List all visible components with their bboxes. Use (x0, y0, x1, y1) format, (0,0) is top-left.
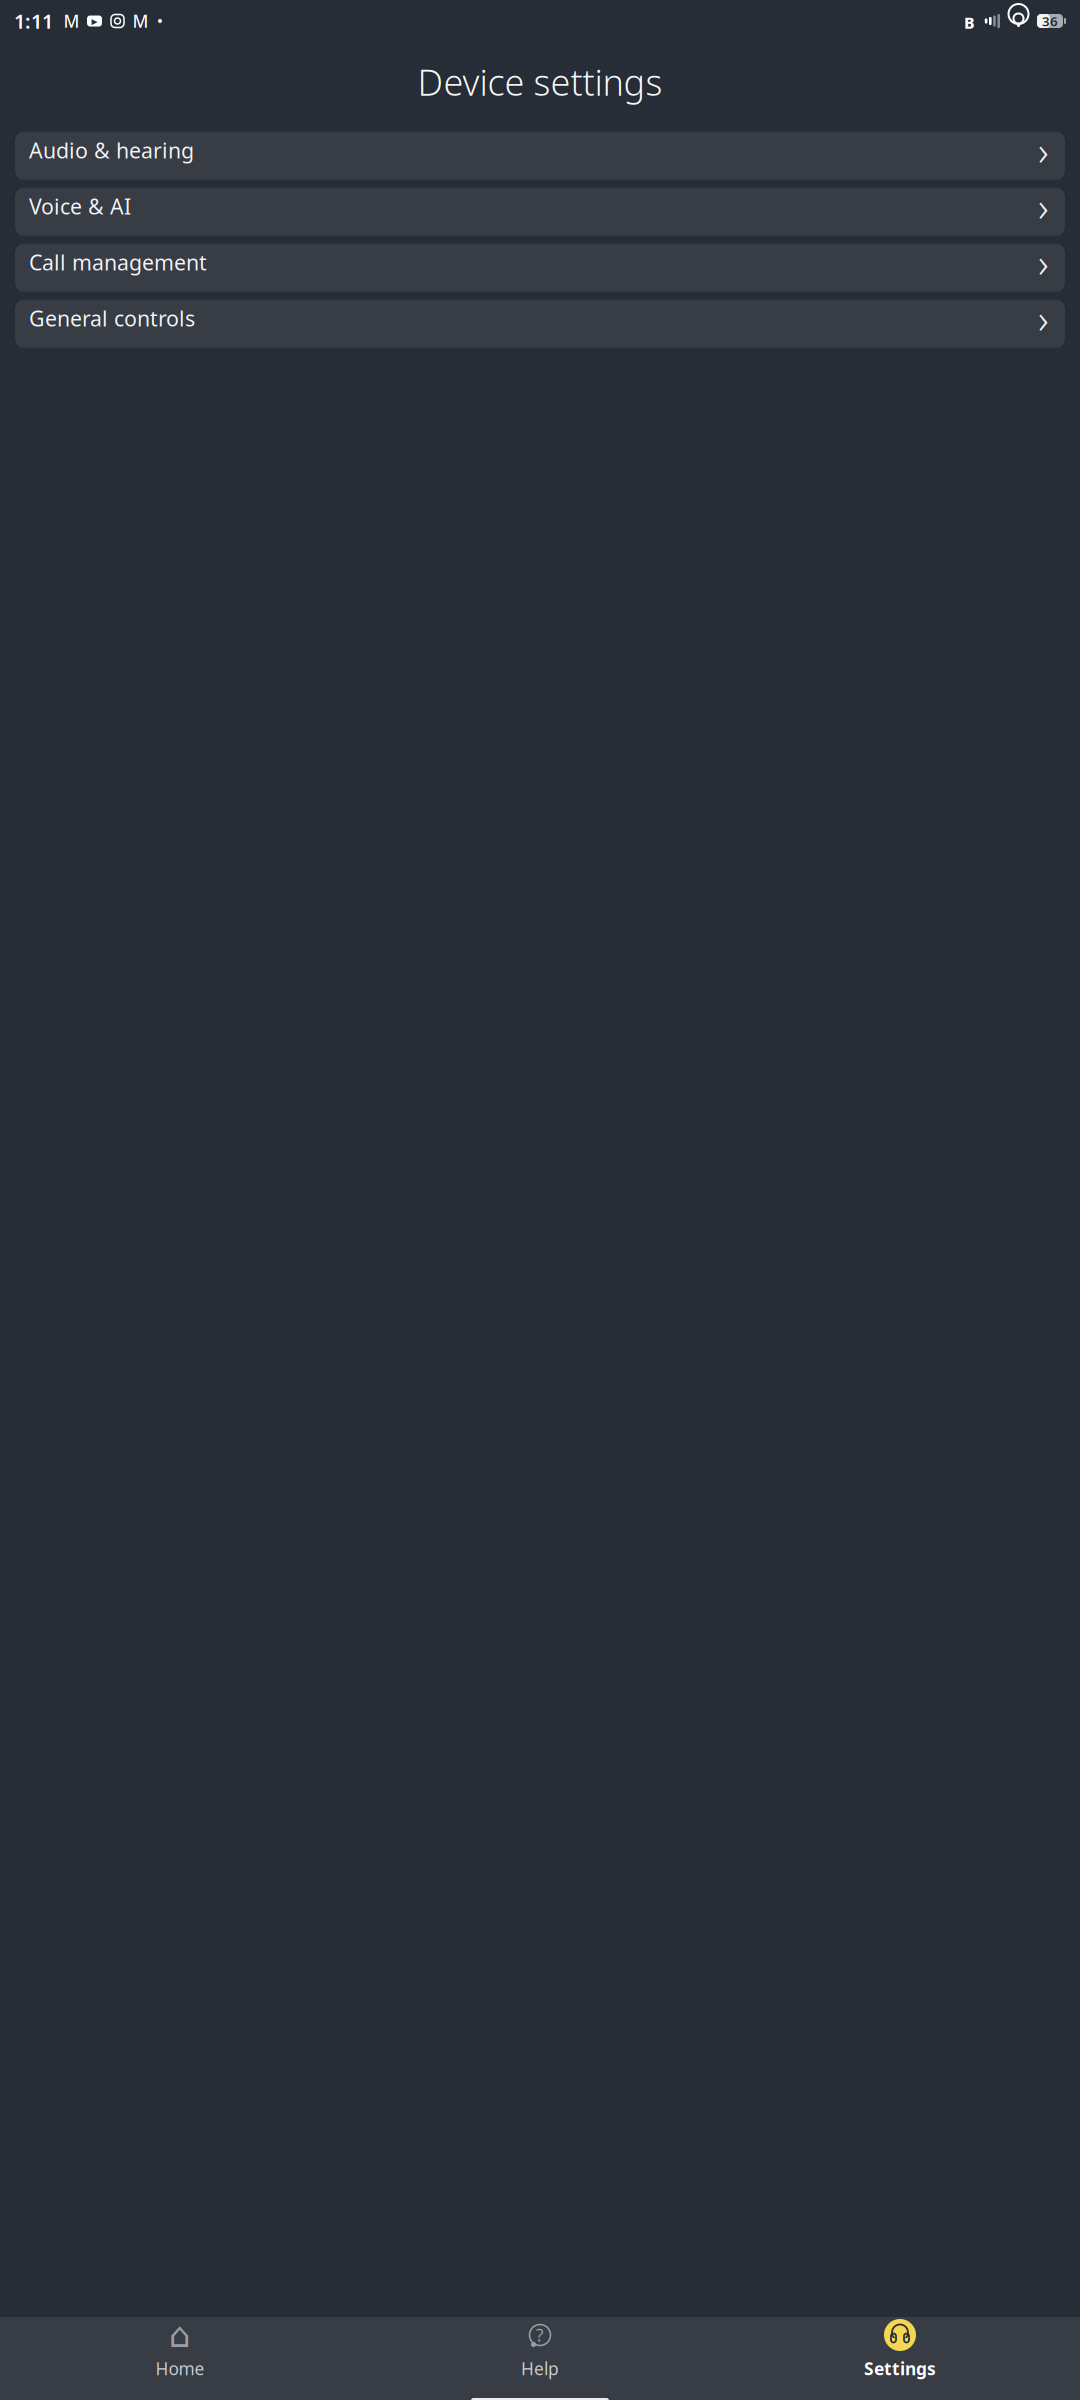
staticText: Call management (29, 248, 207, 276)
staticText: 36 (1042, 12, 1058, 30)
staticText: › (1038, 236, 1049, 289)
staticText: Help (521, 2357, 559, 2380)
button[interactable]: ⌂ (0, 2309, 360, 2390)
staticText: ? (536, 2323, 544, 2346)
staticText: › (1038, 124, 1049, 177)
staticText: M (63, 9, 79, 32)
staticText: Voice & AI (29, 192, 131, 220)
staticText: Home (155, 2357, 204, 2380)
staticText: › (1038, 180, 1049, 233)
staticText: General controls (29, 304, 195, 332)
staticText: ⌂ (169, 2315, 191, 2355)
staticText: ʙ (964, 8, 975, 34)
button[interactable]: ? (360, 2309, 720, 2390)
staticText: Settings (864, 2357, 936, 2380)
staticText: › (1038, 292, 1049, 345)
staticText: Device settings (417, 58, 662, 106)
button[interactable]: Audio & hearing (15, 132, 1065, 180)
button[interactable]: Settings (720, 2309, 1080, 2390)
staticText: 1:11 (14, 8, 53, 34)
staticText: ▸ (91, 14, 97, 28)
button[interactable]: General controls (15, 300, 1065, 348)
staticText: Audio & hearing (29, 136, 194, 164)
button[interactable]: Voice & AI (15, 188, 1065, 236)
button[interactable]: Call management (15, 244, 1065, 292)
staticText: M (132, 9, 148, 32)
